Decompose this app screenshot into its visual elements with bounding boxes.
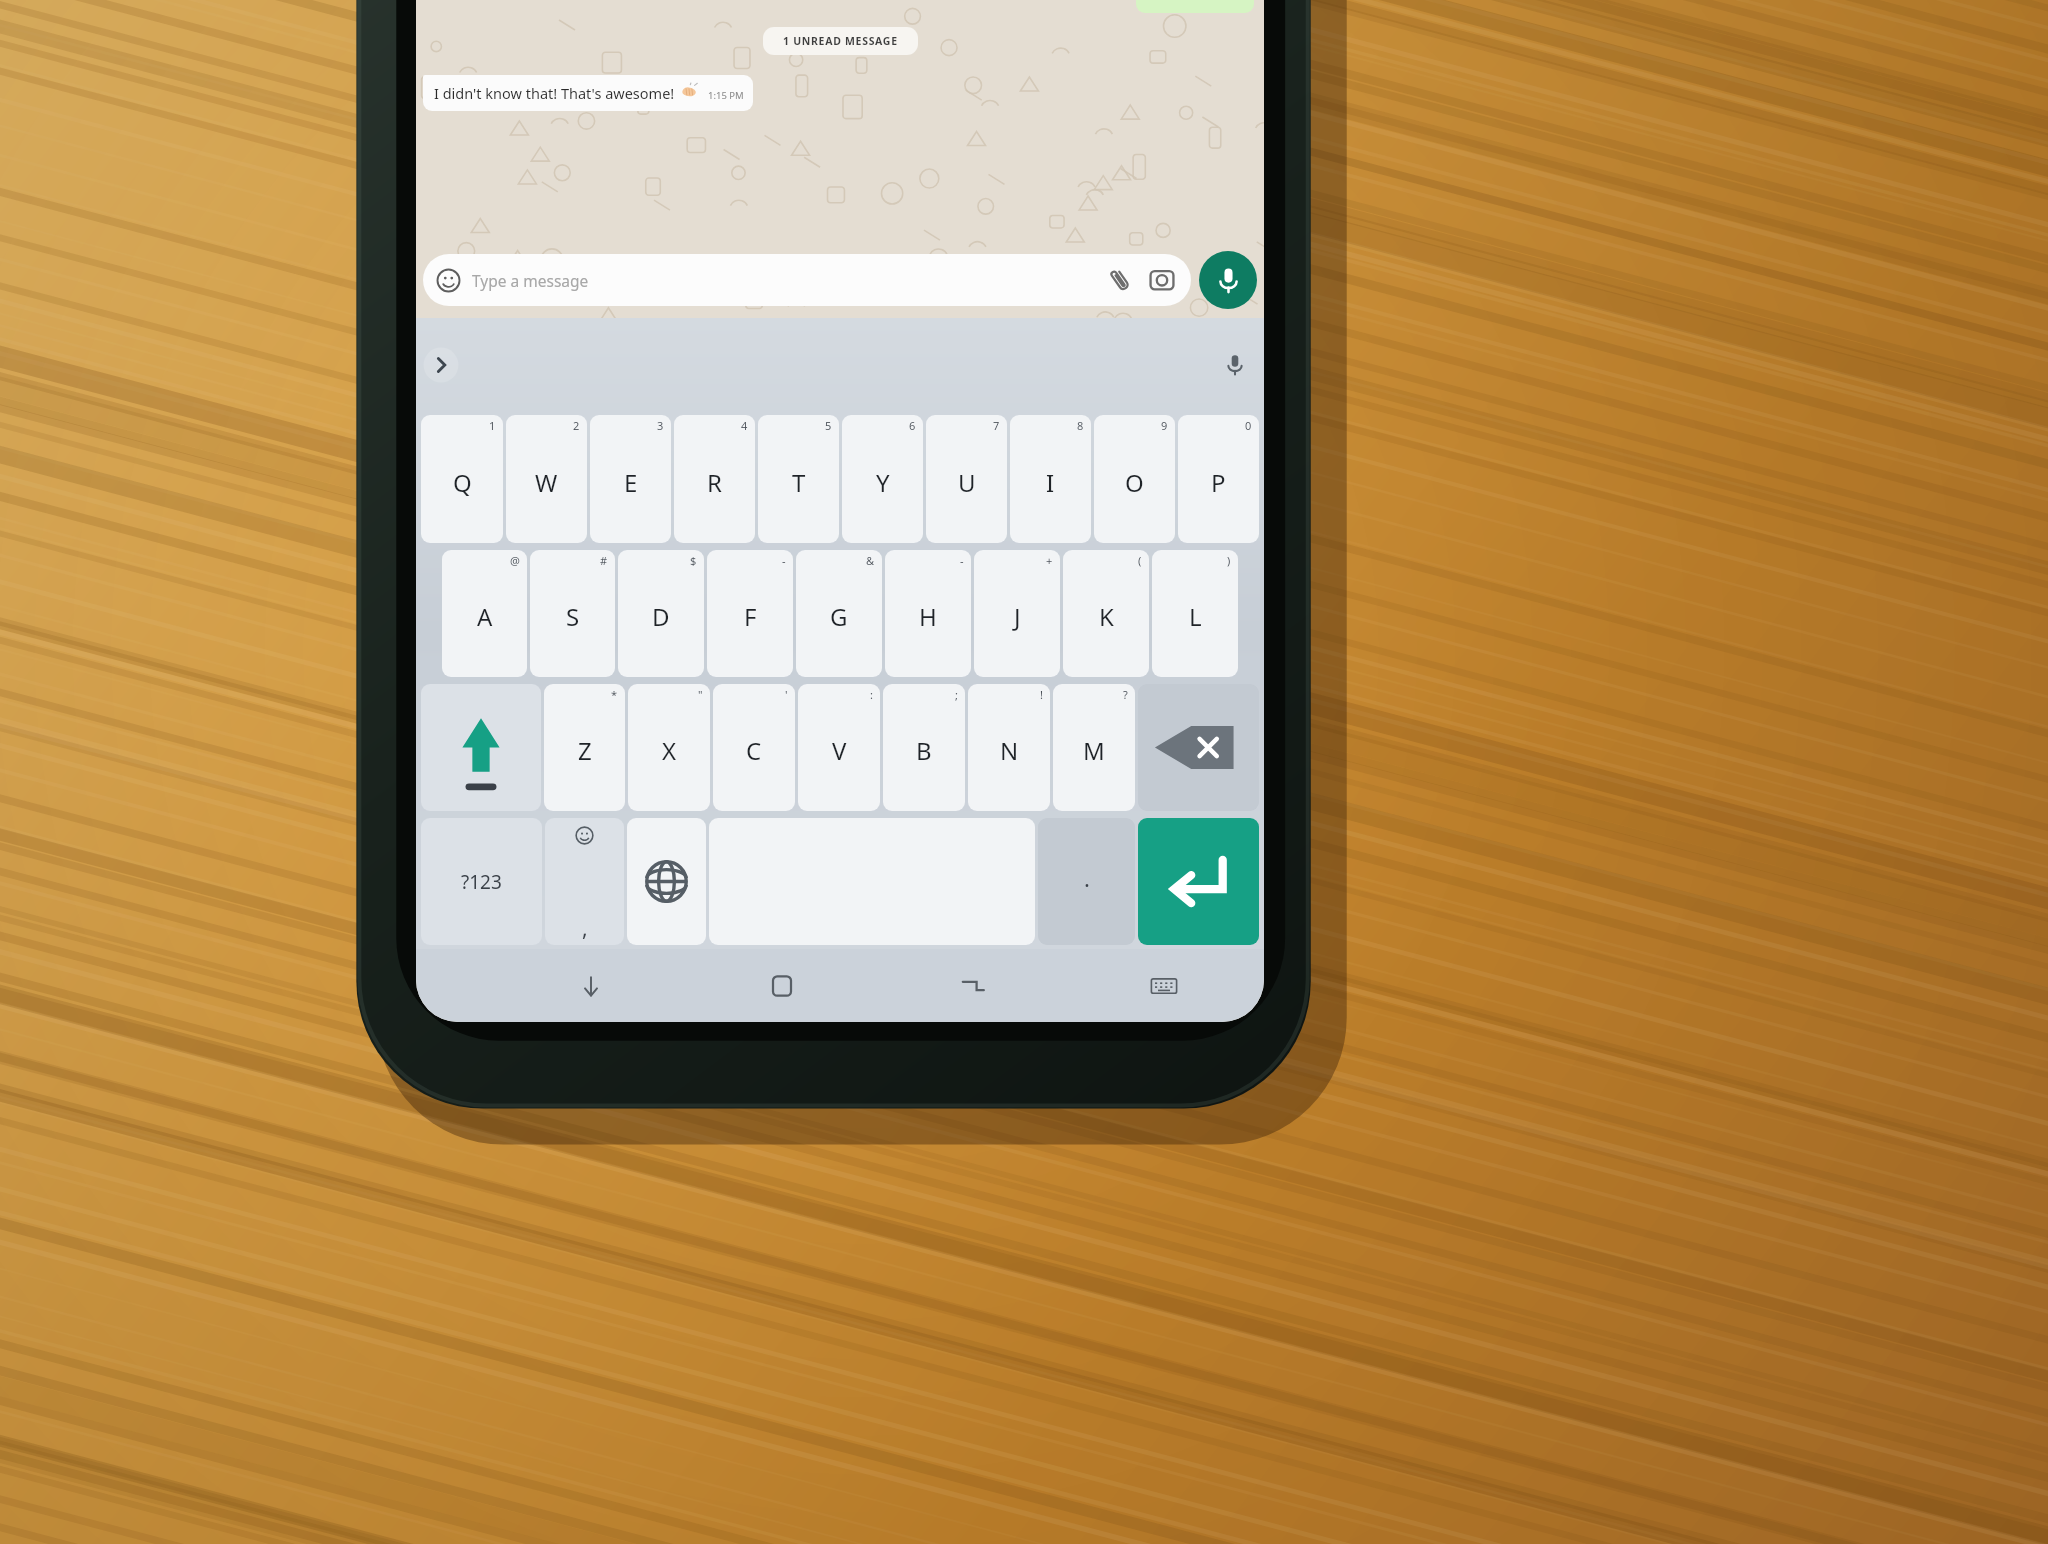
staticText: 4 <box>741 418 748 433</box>
staticText: - <box>960 553 964 568</box>
button[interactable]: I didn't know that! That's awesome! <box>423 75 753 111</box>
button[interactable]: Home <box>732 949 832 1022</box>
staticText: X <box>662 734 677 767</box>
button[interactable]: ? <box>1053 684 1135 811</box>
button[interactable]: : <box>798 684 880 811</box>
button[interactable]: 9 <box>1094 415 1175 543</box>
button[interactable]: 4 <box>674 415 755 543</box>
staticText: P <box>1211 466 1226 499</box>
button[interactable]: 1 UNREAD MESSAGE <box>763 27 918 55</box>
button[interactable]: Emoji <box>435 267 461 293</box>
staticText: U <box>958 466 976 499</box>
staticText: M <box>1083 734 1105 767</box>
button[interactable]: 8 <box>1010 415 1091 543</box>
staticText: 2 <box>573 418 580 433</box>
button[interactable]: ?123 <box>421 818 542 945</box>
button[interactable]: Recents <box>923 949 1023 1022</box>
staticText: - <box>782 553 786 568</box>
button[interactable]: 3 <box>590 415 671 543</box>
button[interactable]: Attach <box>1105 265 1135 295</box>
button[interactable]: 0 <box>1178 415 1259 543</box>
staticText: I <box>1046 466 1055 499</box>
staticText: H <box>919 600 937 633</box>
button[interactable]: & <box>796 550 882 677</box>
staticText: ) <box>1227 553 1231 568</box>
staticText: 5 <box>825 418 832 433</box>
staticText: ; <box>955 687 958 702</box>
staticText: S <box>566 600 580 633</box>
staticText: : <box>870 687 873 702</box>
button[interactable]: ; <box>883 684 965 811</box>
staticText: L <box>1189 600 1202 633</box>
staticText: Type a message <box>472 270 1105 291</box>
staticText: ! <box>1040 687 1043 702</box>
button[interactable]: * <box>544 684 625 811</box>
button[interactable]: Switch keyboard <box>1114 949 1214 1022</box>
button[interactable]: 5 <box>758 415 839 543</box>
button[interactable]: - <box>885 550 971 677</box>
staticText: . <box>1084 863 1090 893</box>
button[interactable]: # <box>530 550 615 677</box>
staticText: $ <box>690 553 697 568</box>
button[interactable]: - <box>707 550 793 677</box>
staticText: N <box>1000 734 1019 767</box>
button[interactable]: Camera <box>1147 265 1177 295</box>
staticText: @ <box>510 553 520 568</box>
staticText: Q <box>453 466 472 499</box>
staticText: 3 <box>657 418 664 433</box>
button[interactable]: Expand toolbar <box>420 344 462 386</box>
staticText: A <box>477 600 493 633</box>
staticText: ?123 <box>461 869 502 895</box>
staticText: ? <box>1123 687 1128 702</box>
button[interactable]: 6 <box>842 415 923 543</box>
button[interactable]: 2 <box>506 415 587 543</box>
staticText: & <box>866 553 875 568</box>
staticText: Y <box>876 466 890 499</box>
staticText: B <box>916 734 932 767</box>
staticText: 7 <box>993 418 1000 433</box>
staticText: , <box>582 914 588 943</box>
staticText: 1:15 PM <box>708 89 744 102</box>
button[interactable]: 7 <box>926 415 1007 543</box>
staticText: I didn't know that! That's awesome! <box>434 83 675 103</box>
button[interactable]: Record voice message <box>1199 251 1257 309</box>
button[interactable]: ' <box>713 684 795 811</box>
staticText: " <box>698 687 703 702</box>
button[interactable]: $ <box>618 550 704 677</box>
staticText: 1 <box>489 418 496 433</box>
staticText: 6 <box>909 418 916 433</box>
staticText: * <box>611 687 618 702</box>
staticText: D <box>652 600 670 633</box>
staticText: R <box>707 466 722 499</box>
staticText: ( <box>1138 553 1142 568</box>
staticText: 0 <box>1245 418 1252 433</box>
button[interactable]: Enter <box>1138 818 1259 945</box>
staticText: Z <box>578 734 592 767</box>
button[interactable]: Emoji <box>423 254 1191 306</box>
button[interactable]: Emoji and comma <box>545 818 624 945</box>
staticText: F <box>744 600 757 633</box>
button[interactable]: ( <box>1063 550 1149 677</box>
staticText: T <box>792 466 806 499</box>
staticText: K <box>1099 600 1114 633</box>
button[interactable]: Hide keyboard <box>540 949 641 1022</box>
button[interactable]: 1 <box>421 415 503 543</box>
button[interactable]: ) <box>1152 550 1238 677</box>
staticText: 1 UNREAD MESSAGE <box>783 34 898 48</box>
button[interactable]: Voice input <box>1214 344 1256 386</box>
button[interactable]: " <box>628 684 710 811</box>
button[interactable]: + <box>974 550 1060 677</box>
button[interactable]: @ <box>442 550 527 677</box>
button[interactable]: Change language <box>627 818 706 945</box>
staticText: V <box>832 734 847 767</box>
button[interactable]: Shift <box>421 684 541 811</box>
staticText: C <box>746 734 762 767</box>
staticText: + <box>1046 553 1053 568</box>
staticText: ' <box>785 687 788 702</box>
button[interactable]: Backspace <box>1138 684 1259 811</box>
staticText: E <box>624 466 638 499</box>
staticText: 9 <box>1161 418 1168 433</box>
button[interactable]: ! <box>968 684 1050 811</box>
